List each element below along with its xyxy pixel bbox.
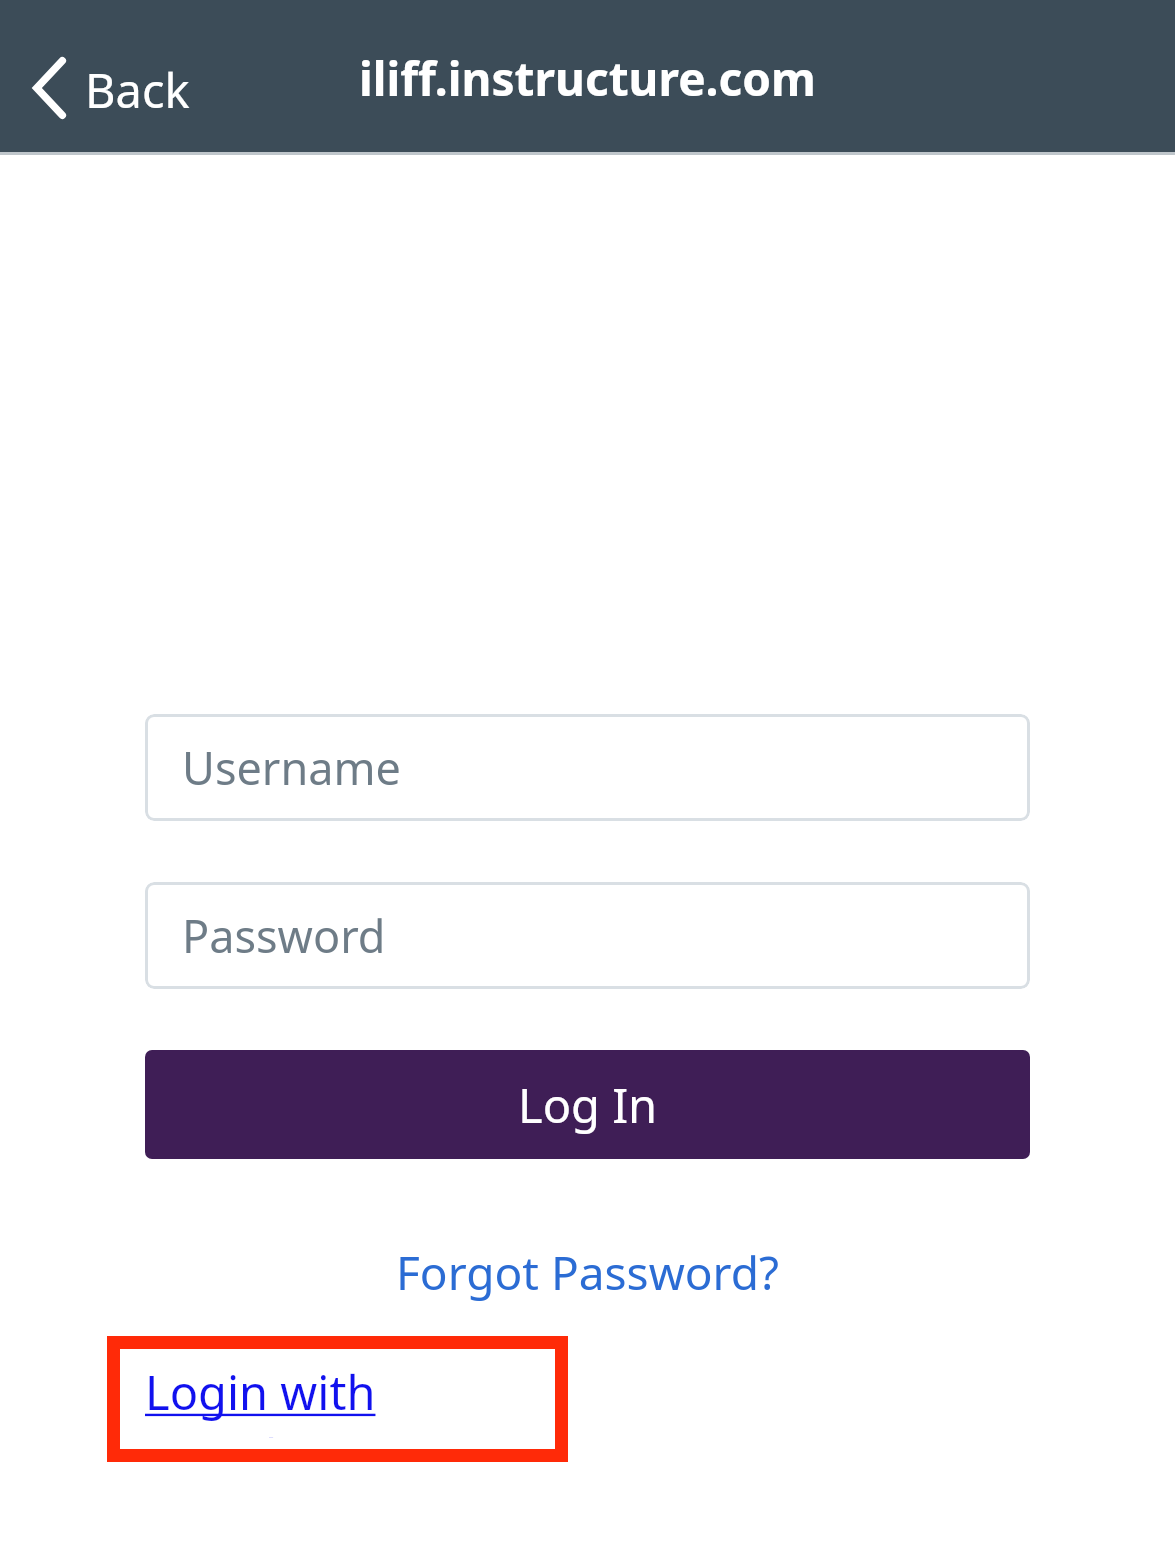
button[interactable]: Login with Google xyxy=(145,1360,545,1438)
staticText: Back xyxy=(85,58,190,122)
button[interactable]: Back xyxy=(10,40,210,136)
button[interactable]: Username xyxy=(145,714,1030,821)
button[interactable]: Log In xyxy=(145,1050,1030,1159)
staticText: iliff.instructure.com xyxy=(359,47,816,110)
staticText: Log In xyxy=(518,1073,658,1137)
staticText: Password xyxy=(182,905,386,966)
staticText: Username xyxy=(182,737,401,798)
button[interactable]: Forgot Password? xyxy=(145,1234,1030,1310)
button[interactable]: Password xyxy=(145,882,1030,989)
staticText: Forgot Password? xyxy=(396,1241,779,1304)
staticText: Login with Google xyxy=(145,1360,545,1438)
